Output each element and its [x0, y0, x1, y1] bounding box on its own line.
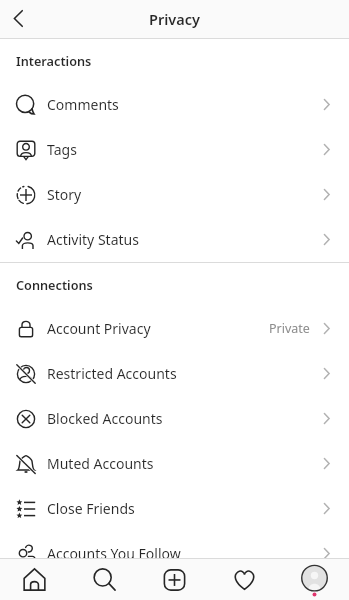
staticText: Accounts You Follow	[47, 544, 320, 563]
button[interactable]: Create	[139, 559, 209, 600]
button[interactable]: Close Friends	[0, 486, 349, 531]
staticText: Restricted Accounts	[47, 364, 320, 383]
staticText: Private	[269, 320, 310, 337]
button[interactable]: Activity Status	[0, 217, 349, 262]
button[interactable]: Muted Accounts	[0, 441, 349, 486]
button[interactable]: Profile	[279, 559, 349, 600]
button[interactable]: Search	[69, 559, 139, 600]
staticText: Interactions	[16, 52, 92, 69]
button[interactable]: Home	[0, 559, 69, 600]
staticText: Close Friends	[47, 499, 320, 518]
button[interactable]: Comments	[0, 82, 349, 127]
button[interactable]: Activity	[209, 559, 279, 600]
button[interactable]: Tags	[0, 127, 349, 172]
staticText: Tags	[47, 140, 320, 159]
staticText: Connections	[16, 276, 93, 293]
staticText: Activity Status	[47, 230, 320, 249]
button[interactable]: Blocked Accounts	[0, 396, 349, 441]
button[interactable]: Accounts You Follow	[0, 531, 349, 576]
staticText: Privacy	[149, 9, 200, 29]
staticText: Comments	[47, 95, 320, 114]
button[interactable]: Account Privacy	[0, 306, 349, 351]
staticText: Account Privacy	[47, 319, 269, 338]
staticText: Story	[47, 185, 320, 204]
staticText: Blocked Accounts	[47, 409, 320, 428]
staticText: Muted Accounts	[47, 454, 320, 473]
button[interactable]: Story	[0, 172, 349, 217]
button[interactable]: Back	[4, 4, 33, 33]
button[interactable]: Restricted Accounts	[0, 351, 349, 396]
